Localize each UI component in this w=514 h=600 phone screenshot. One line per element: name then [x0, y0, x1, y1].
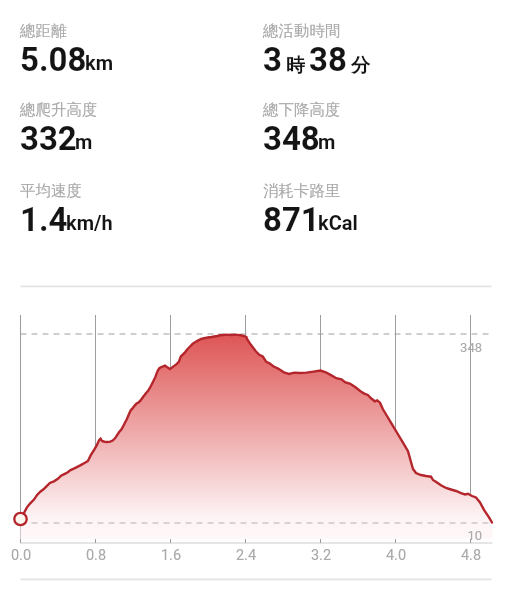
- staticText: 總距離: [20, 21, 67, 41]
- staticText: 4.0: [366, 547, 426, 564]
- staticText: 871: [263, 200, 320, 239]
- staticText: m: [318, 130, 336, 153]
- staticText: kCal: [318, 211, 358, 234]
- staticText: 總活動時間: [263, 21, 341, 41]
- staticText: 38: [309, 40, 347, 79]
- staticText: 時: [286, 54, 305, 78]
- button[interactable]: 總下降高度: [263, 100, 341, 120]
- staticText: 平均速度: [20, 181, 82, 201]
- button[interactable]: 消耗卡路里: [263, 181, 341, 201]
- staticText: 348: [263, 119, 320, 158]
- staticText: 總爬升高度: [20, 100, 98, 120]
- button[interactable]: 總活動時間: [263, 21, 341, 41]
- staticText: km/h: [66, 211, 113, 234]
- staticText: 0.8: [66, 547, 126, 564]
- staticText: 348: [422, 340, 482, 355]
- staticText: 5.08: [20, 40, 87, 79]
- button[interactable]: 平均速度: [20, 181, 82, 201]
- staticText: 分: [351, 54, 370, 78]
- staticText: 消耗卡路里: [263, 181, 341, 201]
- staticText: 1.6: [141, 547, 201, 564]
- staticText: 2.4: [216, 547, 276, 564]
- staticText: 3: [263, 40, 282, 79]
- staticText: km: [85, 51, 113, 74]
- staticText: 總下降高度: [263, 100, 341, 120]
- staticText: 4.8: [441, 547, 501, 564]
- staticText: 3.2: [291, 547, 351, 564]
- staticText: 1.4: [20, 200, 68, 239]
- staticText: 332: [20, 119, 77, 158]
- button[interactable]: 總距離: [20, 21, 67, 41]
- staticText: m: [75, 130, 93, 153]
- staticText: 10: [422, 528, 482, 543]
- button[interactable]: 總爬升高度: [20, 100, 98, 120]
- staticText: 0.0: [0, 547, 51, 564]
